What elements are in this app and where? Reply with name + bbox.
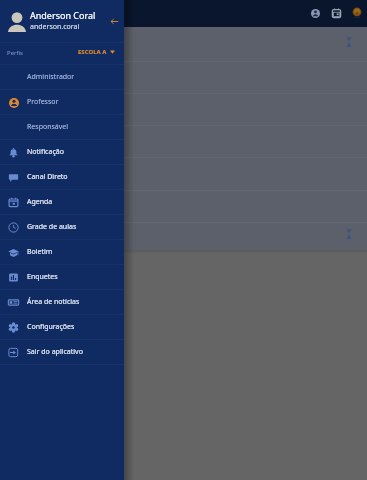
- button[interactable]: Sair do aplicativo: [0, 340, 124, 364]
- button[interactable]: Calendar: [327, 4, 345, 22]
- staticText: Agenda: [27, 197, 53, 207]
- staticText: Responsável: [27, 122, 69, 132]
- button[interactable]: Administrador: [0, 65, 124, 89]
- button[interactable]: Profile: [348, 4, 366, 22]
- staticText: Canal Direto: [27, 172, 68, 182]
- staticText: Administrador: [27, 72, 75, 82]
- staticText: Anderson Coral: [30, 9, 96, 21]
- staticText: ESCOLA A: [78, 48, 107, 56]
- button[interactable]: Agenda: [0, 190, 124, 214]
- staticText: Notificação: [27, 147, 64, 157]
- button[interactable]: Professor: [0, 90, 124, 114]
- button[interactable]: Notificação: [0, 140, 124, 164]
- staticText: Boletim: [27, 247, 53, 257]
- button[interactable]: Área de notícias: [0, 290, 124, 314]
- staticText: Área de notícias: [27, 297, 80, 307]
- button[interactable]: Canal Direto: [0, 165, 124, 189]
- button[interactable]: ESCOLA A: [76, 46, 117, 58]
- button[interactable]: Configurações: [0, 315, 124, 339]
- staticText: anderson.coral: [30, 22, 80, 32]
- staticText: Enquetes: [27, 272, 58, 282]
- staticText: Perfis: [7, 49, 23, 57]
- button[interactable]: Boletim: [0, 240, 124, 264]
- button[interactable]: Grade de aulas: [0, 215, 124, 239]
- button[interactable]: Close drawer: [106, 13, 122, 29]
- staticText: Professor: [27, 97, 59, 107]
- button[interactable]: Enquetes: [0, 265, 124, 289]
- staticText: Sair do aplicativo: [27, 347, 83, 357]
- staticText: Grade de aulas: [27, 222, 77, 232]
- button[interactable]: Responsável: [0, 115, 124, 139]
- button[interactable]: Account: [306, 4, 324, 22]
- staticText: Configurações: [27, 322, 75, 332]
